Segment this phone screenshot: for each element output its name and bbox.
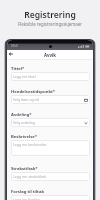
staticText: Velg avdeling [13,120,35,125]
button[interactable]: Velg avdeling [11,118,90,127]
staticText: Tittel* [11,66,25,71]
staticText: Registrering [0,9,100,21]
staticText: Avdeling* [11,112,32,117]
staticText: Hendelsestidspunkt* [11,89,56,94]
staticText: Fleksible registreringsskjemaer [0,21,100,27]
button[interactable]: Legg inn beskrivelse [11,140,90,156]
staticText: 09:41 [11,44,19,48]
button[interactable]: Velg dato og tid [11,95,90,104]
button[interactable]: Legg inn strakstiltak [11,172,90,181]
staticText: Avvik [44,52,56,58]
staticText: Legg inn forslag [13,197,40,200]
button[interactable]: Legg inn tittel [11,72,90,81]
button[interactable]: Legg inn forslag [11,195,90,200]
staticText: Beskrivelse* [11,134,38,139]
button[interactable]: Back [7,50,15,58]
staticText: Legg inn strakstiltak [13,174,47,179]
staticText: Strakstiltak* [11,166,38,171]
staticText: Legg inn beskrivelse [13,142,47,147]
staticText: Forslag til tiltak [11,189,45,194]
staticText: Legg inn tittel [13,74,36,79]
staticText: Velg dato og tid [13,97,39,102]
